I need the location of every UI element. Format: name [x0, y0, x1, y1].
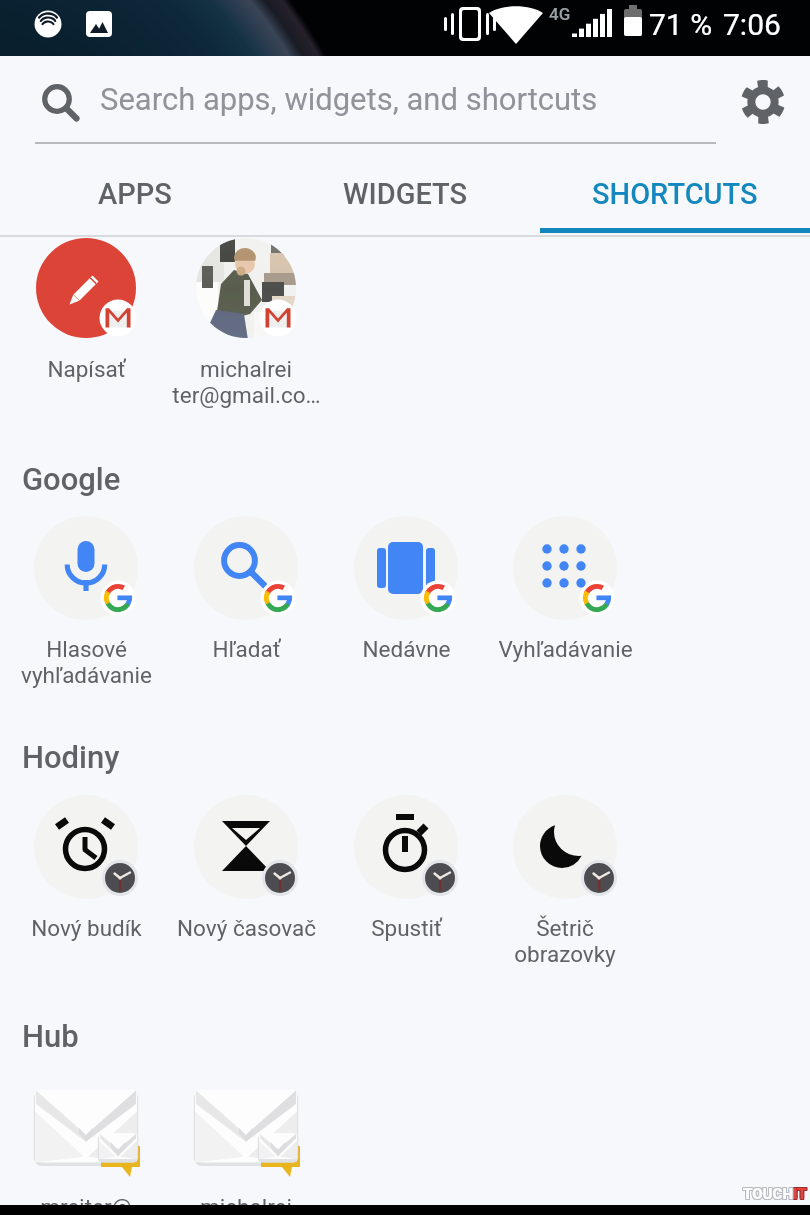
button[interactable]: Šetrič	[485, 795, 645, 967]
button[interactable]: Vyhľadávanie	[485, 516, 645, 662]
staticText: IT	[794, 1186, 808, 1204]
button[interactable]: WIDGETS	[270, 148, 540, 233]
staticText: ter@gmail.co…	[172, 382, 321, 408]
button[interactable]: APPS	[0, 148, 270, 233]
staticText: TOUCH	[744, 1185, 794, 1203]
staticText: APPS	[98, 177, 172, 211]
staticText: 7:06	[723, 7, 781, 42]
staticText: IT	[793, 1185, 807, 1203]
staticText: Nový budík	[31, 915, 142, 941]
staticText: TOUCH	[743, 1184, 793, 1202]
button[interactable]: Nový budík	[6, 795, 166, 941]
button[interactable]: Hlasové	[6, 516, 166, 688]
staticText: Hub	[22, 1018, 79, 1054]
button[interactable]: Spustiť	[326, 795, 486, 941]
staticText: WIDGETS	[343, 177, 468, 211]
staticText: TOUCH	[742, 1184, 792, 1202]
staticText: TOUCH	[744, 1186, 794, 1204]
button[interactable]: Search apps, widgets, and shortcuts	[0, 56, 810, 142]
staticText: TOUCH	[742, 1186, 792, 1204]
staticText: obrazovky	[514, 941, 616, 967]
button[interactable]: Settings	[735, 74, 791, 130]
staticText: Spustiť	[371, 915, 442, 941]
staticText: michalrei	[200, 1194, 292, 1215]
button[interactable]: michalrei	[166, 236, 326, 408]
staticText: Google	[22, 461, 121, 497]
button[interactable]: Nedávne	[326, 516, 486, 662]
button[interactable]: SHORTCUTS	[540, 148, 810, 233]
staticText: Hodiny	[22, 739, 120, 775]
staticText: TOUCH	[744, 1184, 794, 1202]
button[interactable]: Napísať	[6, 236, 166, 382]
staticText: IT	[793, 1186, 807, 1204]
staticText: IT	[792, 1186, 806, 1204]
staticText: TOUCH	[742, 1185, 792, 1203]
button[interactable]: michalrei	[166, 1074, 326, 1215]
staticText: Hľadať	[212, 636, 281, 662]
staticText: 71 %	[649, 7, 713, 42]
staticText: IT	[794, 1185, 808, 1203]
button[interactable]: Nový časovač	[166, 795, 326, 941]
staticText: IT	[794, 1184, 808, 1202]
staticText: Search apps, widgets, and shortcuts	[100, 81, 598, 117]
staticText: IT	[792, 1184, 806, 1202]
staticText: Nedávne	[362, 636, 451, 662]
staticText: Vyhľadávanie	[498, 636, 633, 662]
button[interactable]: mrejter@	[6, 1074, 166, 1215]
staticText: 4G	[549, 4, 571, 24]
staticText: Šetrič	[536, 915, 594, 941]
staticText: SHORTCUTS	[592, 177, 758, 211]
staticText: Napísať	[47, 356, 126, 382]
staticText: michalrei	[200, 356, 292, 382]
staticText: TOUCH	[743, 1186, 793, 1204]
staticText: Hlasové	[46, 636, 127, 662]
staticText: IT	[793, 1184, 807, 1202]
staticText: vyhľadávanie	[21, 662, 152, 688]
staticText: mrejter@	[40, 1194, 132, 1215]
staticText: IT	[792, 1185, 806, 1203]
staticText: TOUCH	[743, 1185, 793, 1203]
staticText: Nový časovač	[177, 915, 316, 941]
button[interactable]: Hľadať	[166, 516, 326, 662]
